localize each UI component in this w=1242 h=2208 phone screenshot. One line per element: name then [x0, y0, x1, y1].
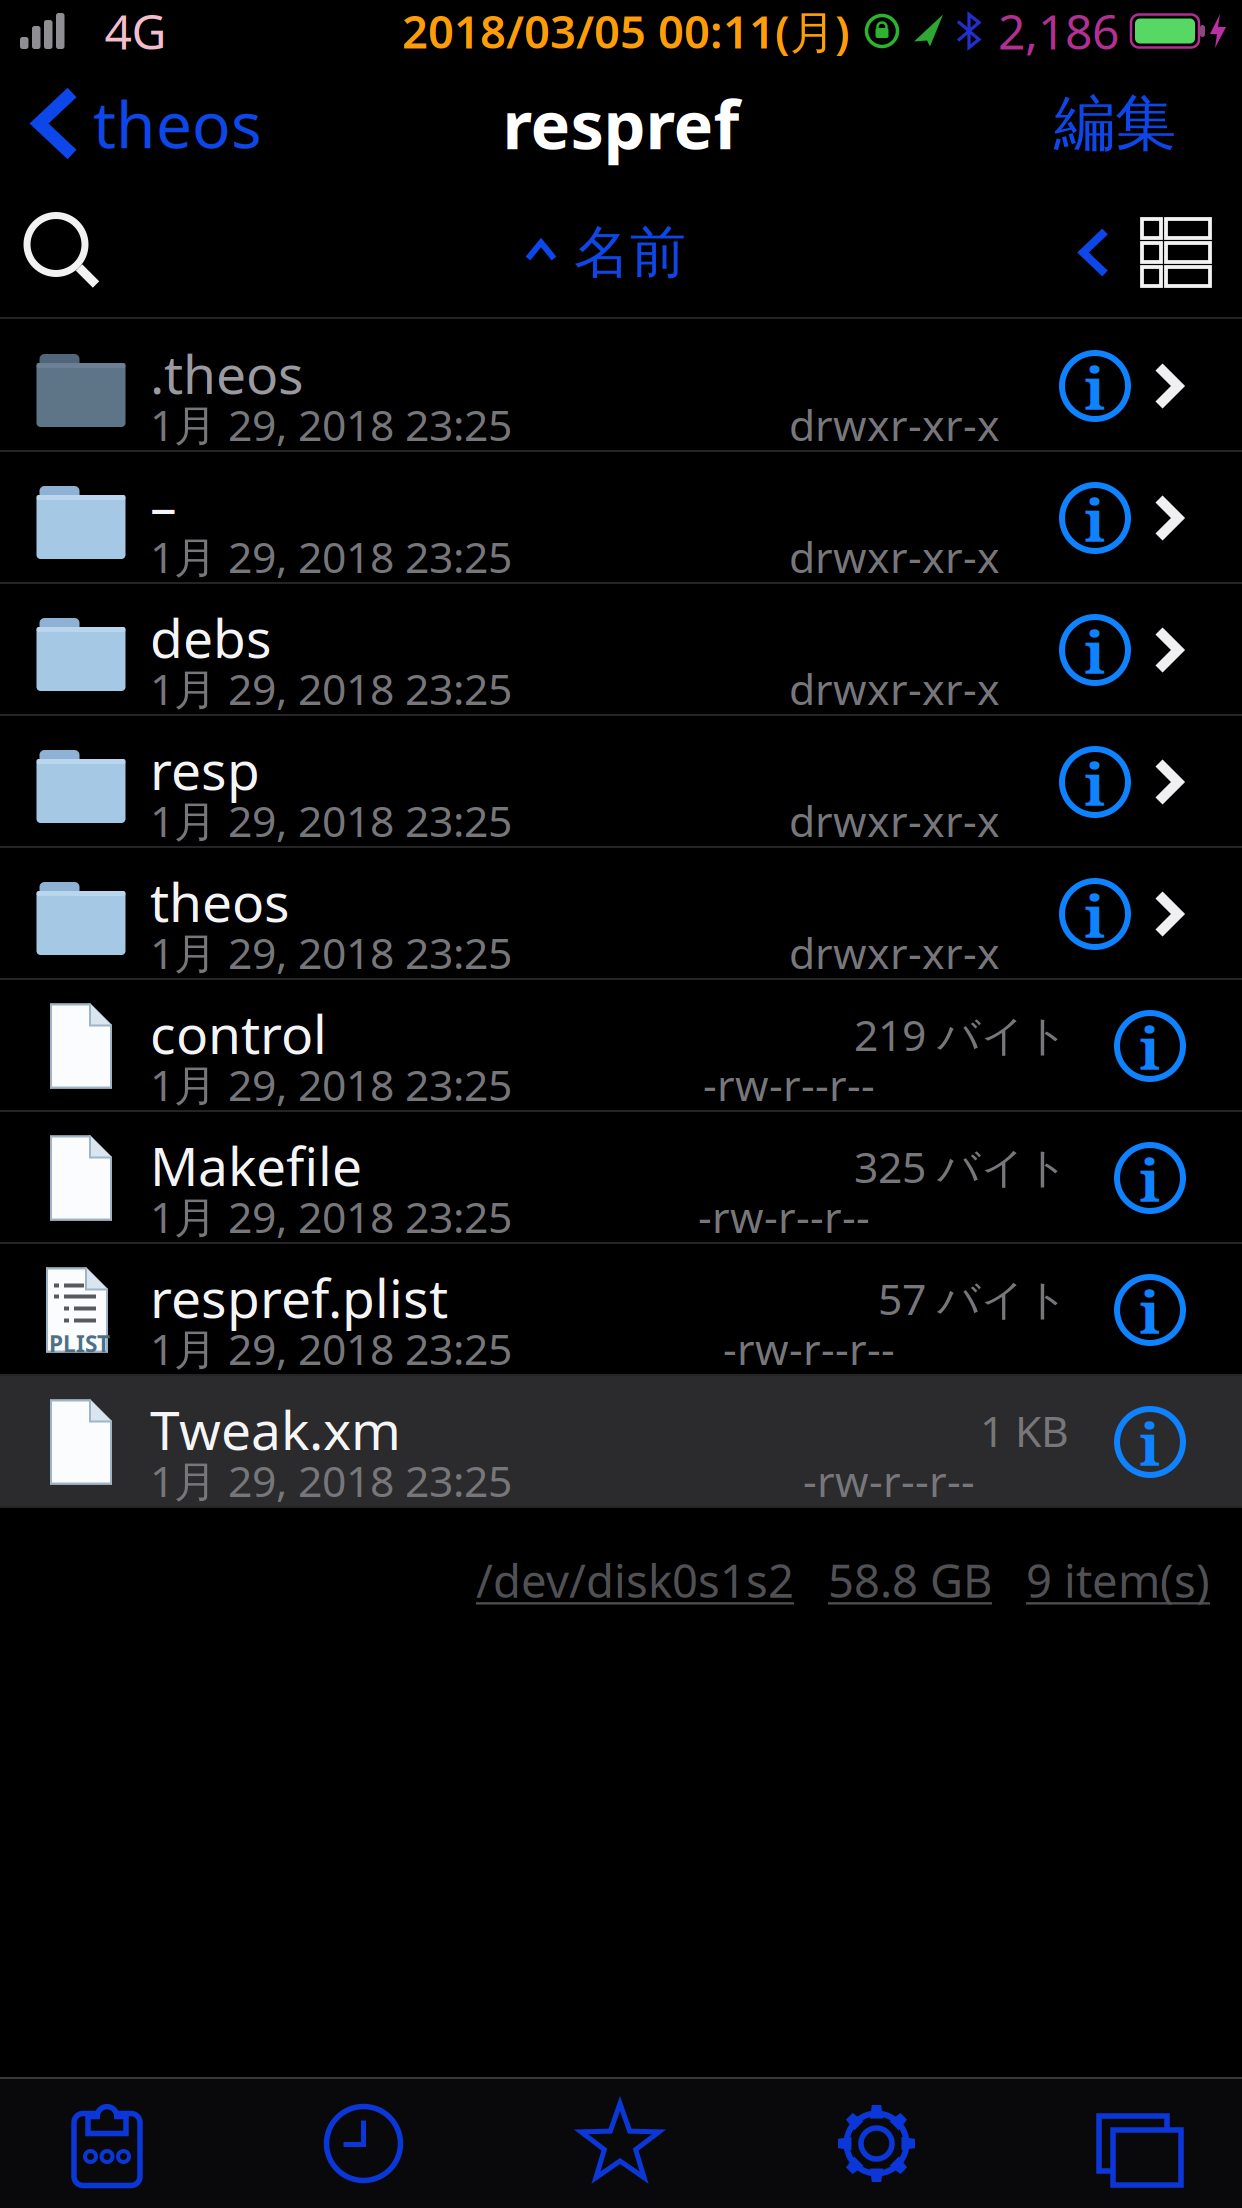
button[interactable]: 検索	[0, 212, 104, 292]
staticText: control	[150, 998, 327, 1069]
staticText: drwxr-xr-x	[789, 924, 1000, 981]
staticText: 2,186	[998, 0, 1119, 63]
staticText: 9 item(s)	[1026, 1550, 1210, 1610]
staticText: 58.8 GB	[828, 1550, 992, 1610]
staticText: 4G	[104, 0, 166, 63]
staticText: resp	[150, 734, 260, 805]
staticText: /dev/disk0s1s2	[476, 1550, 794, 1610]
staticText: 1月 29, 2018 23:25	[150, 1452, 512, 1509]
button[interactable]: 情報	[1060, 483, 1130, 553]
button[interactable]: クリップボード	[57, 2079, 157, 2208]
staticText: -rw-r--r--	[698, 1188, 870, 1245]
staticText: drwxr-xr-x	[789, 528, 1000, 585]
staticText: 1月 29, 2018 23:25	[150, 1320, 512, 1377]
staticText: respref.plist	[150, 1262, 448, 1333]
staticText: -rw-r--r--	[723, 1320, 895, 1377]
button[interactable]: 情報	[1060, 351, 1130, 421]
staticText: 57 バイト	[878, 1270, 1069, 1327]
staticText: 1月 29, 2018 23:25	[150, 396, 512, 453]
button[interactable]: theos	[0, 848, 1242, 980]
button[interactable]: Makefile	[0, 1112, 1242, 1244]
button[interactable]: control	[0, 980, 1242, 1112]
button[interactable]: .theos	[0, 320, 1242, 452]
staticText: Makefile	[150, 1130, 362, 1201]
staticText: 219 バイト	[854, 1006, 1069, 1063]
button[interactable]: PLIST	[0, 1244, 1242, 1376]
staticText: 1月 29, 2018 23:25	[150, 792, 512, 849]
button[interactable]: 情報	[1115, 1011, 1185, 1081]
staticText: 325 バイト	[854, 1138, 1069, 1195]
staticText: i	[1084, 479, 1105, 559]
staticText: drwxr-xr-x	[789, 660, 1000, 717]
staticText: 1月 29, 2018 23:25	[150, 1056, 512, 1113]
staticText: respref	[502, 79, 739, 168]
button[interactable]: 戻る	[1083, 231, 1106, 273]
staticText: 編集	[1054, 86, 1176, 161]
staticText: i	[1084, 875, 1105, 955]
button[interactable]: 最近	[313, 2079, 413, 2208]
button[interactable]: –	[0, 452, 1242, 584]
staticText: PLIST	[49, 1328, 110, 1359]
button[interactable]: 情報	[1060, 879, 1130, 949]
staticText: 1月 29, 2018 23:25	[150, 660, 512, 717]
staticText: 2018/03/05 00:11(月)	[402, 1, 850, 61]
staticText: 1月 29, 2018 23:25	[150, 924, 512, 981]
button[interactable]: 情報	[1115, 1143, 1185, 1213]
button[interactable]: 情報	[1115, 1407, 1185, 1477]
staticText: -rw-r--r--	[703, 1056, 875, 1113]
button[interactable]: 情報	[1115, 1275, 1185, 1345]
button[interactable]: Tweak.xm	[0, 1376, 1242, 1508]
button[interactable]: resp	[0, 716, 1242, 848]
staticText: 1 KB	[980, 1402, 1069, 1459]
button[interactable]: 情報	[1060, 615, 1130, 685]
button[interactable]: 名前	[528, 218, 686, 287]
staticText: .theos	[150, 338, 304, 409]
staticText: Tweak.xm	[150, 1394, 401, 1465]
staticText: theos	[93, 81, 262, 166]
button[interactable]: debs	[0, 584, 1242, 716]
button[interactable]: 表示	[1106, 219, 1242, 286]
staticText: debs	[150, 602, 272, 673]
staticText: i	[1139, 1139, 1160, 1219]
staticText: i	[1084, 347, 1105, 427]
button[interactable]: 編集	[1054, 86, 1242, 161]
staticText: drwxr-xr-x	[789, 792, 1000, 849]
staticText: -rw-r--r--	[803, 1452, 975, 1509]
staticText: i	[1084, 611, 1105, 691]
button[interactable]: 設定	[826, 2079, 926, 2208]
staticText: drwxr-xr-x	[789, 396, 1000, 453]
staticText: –	[150, 470, 177, 541]
staticText: 1月 29, 2018 23:25	[150, 1188, 512, 1245]
staticText: i	[1139, 1403, 1160, 1483]
button[interactable]: ウインドウ	[1083, 2079, 1183, 2208]
button[interactable]: theos	[0, 81, 262, 166]
staticText: i	[1139, 1007, 1160, 1087]
staticText: 名前	[574, 218, 686, 287]
staticText: i	[1139, 1271, 1160, 1351]
staticText: i	[1084, 743, 1105, 823]
button[interactable]: お気に入り	[570, 2079, 670, 2208]
button[interactable]: 情報	[1060, 747, 1130, 817]
staticText: 1月 29, 2018 23:25	[150, 528, 512, 585]
staticText: theos	[150, 866, 290, 937]
